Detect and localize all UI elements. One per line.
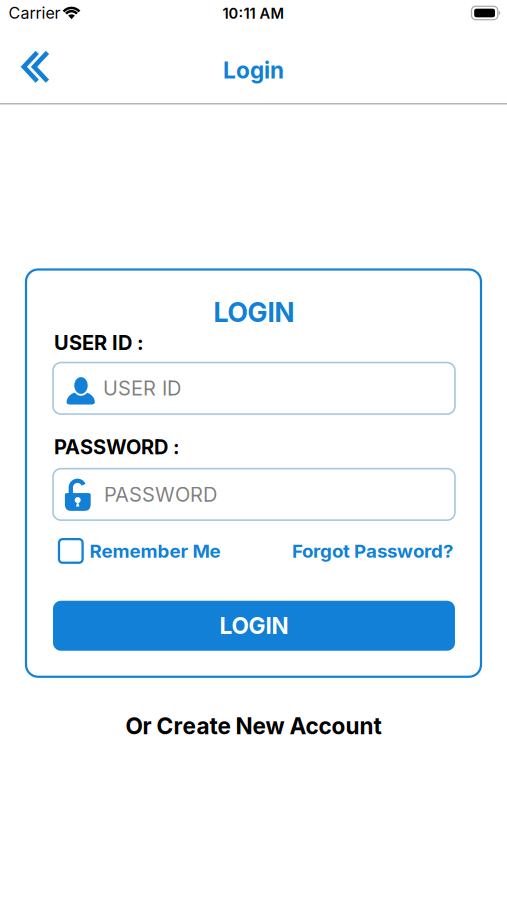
staticText: Remember Me: [90, 540, 221, 562]
button[interactable]: Remember Me: [53, 539, 221, 563]
staticText: LOGIN: [219, 612, 288, 639]
staticText: Or Create New Account: [125, 713, 381, 739]
button[interactable]: PASSWORD: [53, 469, 455, 520]
staticText: Forgot Password?: [292, 540, 453, 562]
staticText: USER ID :: [54, 331, 144, 355]
button[interactable]: Or Create New Account: [125, 713, 381, 739]
staticText: Login: [223, 57, 284, 84]
button[interactable]: USER ID: [53, 363, 455, 414]
staticText: Carrier: [8, 4, 60, 22]
staticText: USER ID: [103, 376, 181, 400]
staticText: LOGIN: [213, 296, 294, 328]
button[interactable]: Forgot Password?: [292, 540, 455, 562]
button[interactable]: LOGIN: [53, 601, 455, 651]
staticText: 10:11 AM: [222, 5, 284, 22]
staticText: PASSWORD: [104, 483, 217, 506]
button[interactable]: Back: [21, 51, 49, 83]
staticText: PASSWORD :: [54, 435, 180, 459]
